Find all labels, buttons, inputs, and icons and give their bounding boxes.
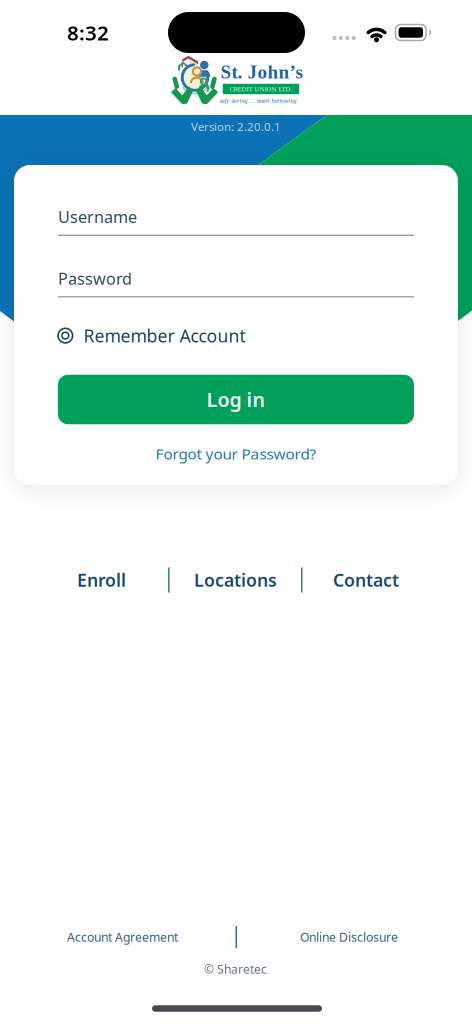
staticText: Username (58, 206, 137, 228)
button[interactable]: Account Agreement (67, 929, 178, 945)
button[interactable]: Username (0, 206, 472, 228)
button[interactable]: Log in (58, 375, 414, 424)
staticText: St. John’s (221, 61, 303, 82)
button[interactable]: Contact (333, 568, 399, 592)
staticText: Locations (194, 568, 277, 592)
button[interactable]: Enroll (77, 568, 126, 592)
staticText: safe saving … smart borrowing (219, 97, 296, 104)
staticText: Log in (206, 386, 265, 413)
staticText: Contact (333, 568, 399, 592)
staticText: Version: 2.20.0.1 (191, 119, 281, 134)
button[interactable]: Online Disclosure (300, 929, 398, 945)
staticText: © Sharetec (204, 961, 267, 977)
staticText: CREDIT UNION LTD. (229, 85, 292, 93)
staticText: 8:32 (67, 19, 109, 46)
staticText: Forgot your Password? (155, 443, 316, 464)
button[interactable]: Remember Account (0, 324, 472, 348)
button[interactable]: Password (0, 268, 472, 290)
button[interactable]: Locations (194, 568, 277, 592)
staticText: Remember Account (84, 324, 246, 348)
staticText: Online Disclosure (300, 929, 398, 945)
button[interactable]: Forgot your Password? (155, 443, 316, 464)
staticText: Password (58, 268, 132, 290)
staticText: Account Agreement (67, 929, 178, 945)
staticText: Enroll (77, 568, 126, 592)
